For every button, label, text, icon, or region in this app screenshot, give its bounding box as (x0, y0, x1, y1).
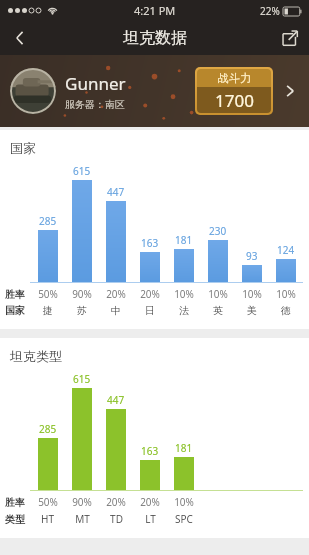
staticText: 10% (174, 287, 194, 301)
staticText: 类型 (5, 513, 25, 526)
other: More (281, 82, 299, 100)
staticText: 坦克类型 (10, 348, 62, 364)
staticText: 447 (107, 393, 125, 407)
staticText: 胜率 (5, 496, 25, 509)
staticText: 4:21 PM (134, 3, 176, 18)
staticText: 捷 (43, 304, 53, 317)
staticText: 国家 (5, 304, 25, 317)
staticText: 苏 (77, 304, 87, 317)
staticText: 447 (107, 185, 125, 199)
staticText: 163 (141, 444, 159, 458)
staticText: 法 (179, 304, 189, 317)
staticText: 90% (72, 287, 92, 301)
staticText: 22% (260, 4, 280, 18)
staticText: 中 (111, 304, 121, 317)
staticText: 10% (208, 287, 228, 301)
staticText: MT (75, 512, 90, 526)
staticText: Gunner (65, 72, 126, 95)
staticText: 10% (242, 287, 262, 301)
staticText: 10% (276, 287, 296, 301)
staticText: SPC (175, 512, 193, 526)
staticText: TD (110, 512, 123, 526)
staticText: 285 (39, 422, 57, 436)
staticText: 20% (106, 495, 126, 509)
staticText: 285 (39, 214, 57, 228)
staticText: 坦克数据 (123, 28, 187, 48)
staticText: LT (145, 512, 156, 526)
staticText: 德 (281, 304, 291, 317)
staticText: 英 (213, 304, 223, 317)
staticText: 战斗力 (218, 71, 251, 85)
staticText: 1700 (215, 89, 254, 112)
staticText: 230 (209, 224, 227, 238)
staticText: 国家 (10, 140, 36, 156)
staticText: 10% (174, 495, 194, 509)
staticText: 181 (175, 441, 193, 455)
staticText: 50% (38, 495, 58, 509)
staticText: 20% (140, 287, 160, 301)
staticText: 20% (106, 287, 126, 301)
staticText: 163 (141, 236, 159, 250)
staticText: 日 (145, 304, 155, 317)
staticText: 90% (72, 495, 92, 509)
staticText: 181 (175, 233, 193, 247)
staticText: 124 (277, 243, 295, 257)
staticText: HT (41, 512, 54, 526)
staticText: 美 (247, 304, 257, 317)
staticText: 50% (38, 287, 58, 301)
button[interactable]: Share (269, 21, 309, 55)
button[interactable]: 战斗力 (197, 69, 271, 113)
staticText: 93 (246, 249, 258, 263)
staticText: 20% (140, 495, 160, 509)
button[interactable]: Back (0, 21, 40, 55)
staticText: 615 (73, 372, 91, 386)
staticText: 服务器：南区 (65, 98, 125, 111)
button[interactable]: Gunner (0, 55, 309, 127)
staticText: 胜率 (5, 288, 25, 301)
staticText: 615 (73, 164, 91, 178)
